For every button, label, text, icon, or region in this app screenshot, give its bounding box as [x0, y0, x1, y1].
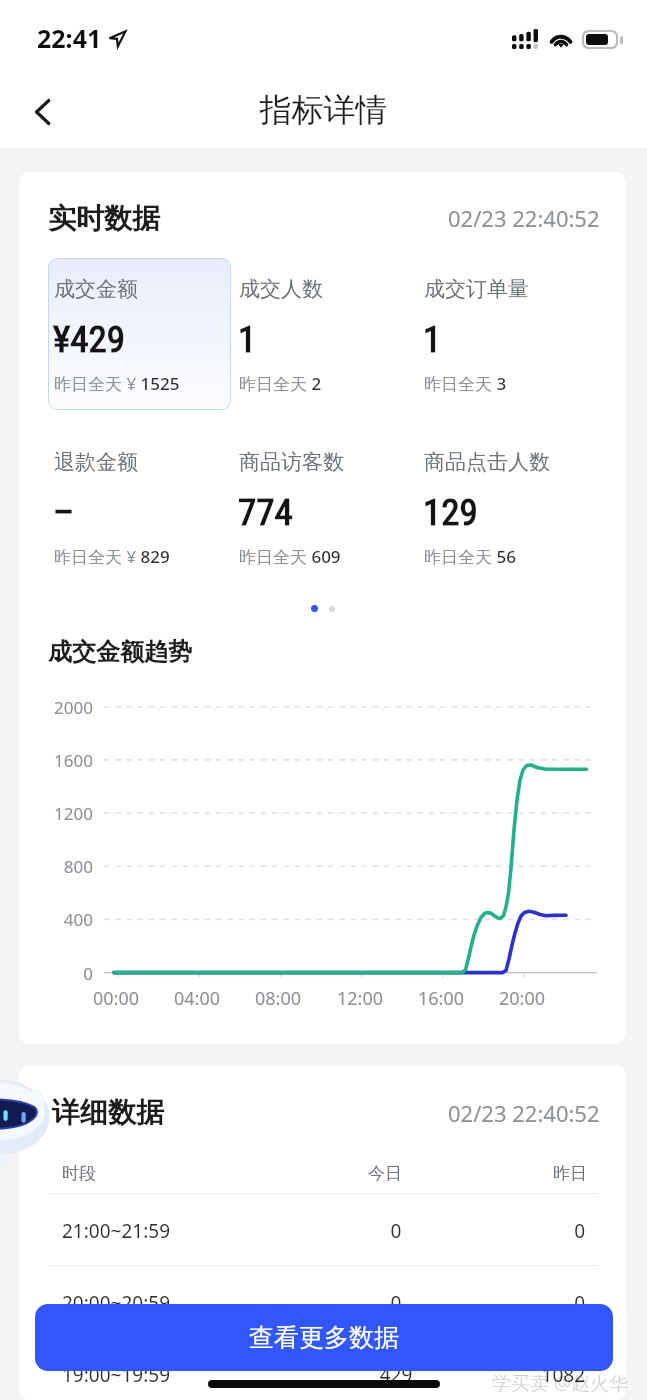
button[interactable]: 19:00~19:59 — [48, 1338, 598, 1400]
button[interactable]: 成交订单量 — [418, 258, 601, 410]
staticText: 02/23 22:40:52 — [448, 1098, 600, 1128]
staticText: 昨日 — [507, 1163, 587, 1184]
staticText: 昨日全天 2 — [239, 372, 322, 395]
staticText: 04:00 — [157, 986, 237, 1011]
staticText: 16:00 — [401, 986, 481, 1011]
staticText: 成交金额趋势 — [48, 637, 192, 667]
button[interactable]: 退款金额 — [48, 431, 231, 583]
staticText: 昨日全天 3 — [424, 372, 507, 395]
staticText: 1600 — [38, 749, 93, 772]
staticText: 12:00 — [320, 986, 400, 1011]
button[interactable]: 成交金额 — [48, 258, 231, 410]
staticText: 00:00 — [76, 986, 156, 1011]
button[interactable]: 20:00~20:59 — [48, 1266, 598, 1338]
staticText: 400 — [38, 908, 93, 931]
staticText: 0 — [356, 1290, 436, 1316]
staticText: ¥429 — [53, 318, 125, 361]
staticText: 今日 — [345, 1163, 425, 1184]
staticText: 成交金额 — [54, 276, 138, 302]
staticText: 查看更多数据 — [249, 1322, 399, 1353]
button[interactable]: 查看更多数据 — [35, 1304, 613, 1371]
staticText: 0 — [356, 1218, 436, 1244]
staticText: 成交人数 — [239, 276, 323, 302]
staticText: 0 — [505, 1290, 585, 1316]
staticText: 800 — [38, 855, 93, 878]
staticText: 昨日全天 ¥ 829 — [54, 545, 170, 568]
staticText: 20:00 — [482, 986, 562, 1011]
button[interactable]: Back — [16, 86, 68, 138]
staticText: 429 — [356, 1362, 436, 1388]
staticText: 1 — [423, 318, 442, 361]
staticText: 商品访客数 — [239, 449, 344, 475]
staticText: 昨日全天 609 — [239, 545, 341, 568]
staticText: 1082 — [505, 1362, 585, 1388]
staticText: 0 — [38, 962, 93, 985]
staticText: 22:41 — [37, 21, 102, 55]
staticText: 成交订单量 — [424, 276, 529, 302]
button[interactable]: 21:00~21:59 — [48, 1194, 598, 1266]
staticText: 时段 — [62, 1163, 96, 1184]
staticText: 2000 — [38, 696, 93, 719]
staticText: 实时数据 — [48, 201, 160, 236]
button[interactable]: 商品访客数 — [233, 431, 416, 583]
staticText: 昨日全天 56 — [424, 545, 516, 568]
staticText: 商品点击人数 — [424, 449, 550, 475]
button[interactable]: 商品点击人数 — [418, 431, 601, 583]
staticText: 129 — [423, 491, 478, 534]
staticText: 昨日全天 ¥ 1525 — [54, 372, 180, 395]
staticText: 774 — [238, 491, 293, 534]
staticText: 0 — [505, 1218, 585, 1244]
staticText: – — [53, 491, 75, 534]
staticText: 1 — [238, 318, 257, 361]
staticText: 详细数据 — [52, 1095, 164, 1130]
button[interactable] — [48, 258, 231, 410]
staticText: 指标详情 — [0, 90, 647, 130]
staticText: 学买卖 @赵火华 — [492, 1370, 629, 1396]
staticText: 21:00~21:59 — [62, 1218, 170, 1244]
staticText: 20:00~20:59 — [62, 1290, 170, 1316]
staticText: 02/23 22:40:52 — [448, 203, 600, 233]
staticText: 19:00~19:59 — [62, 1362, 170, 1388]
staticText: 08:00 — [238, 986, 318, 1011]
button[interactable]: 成交人数 — [233, 258, 416, 410]
staticText: 退款金额 — [54, 449, 138, 475]
staticText: 1200 — [38, 802, 93, 825]
